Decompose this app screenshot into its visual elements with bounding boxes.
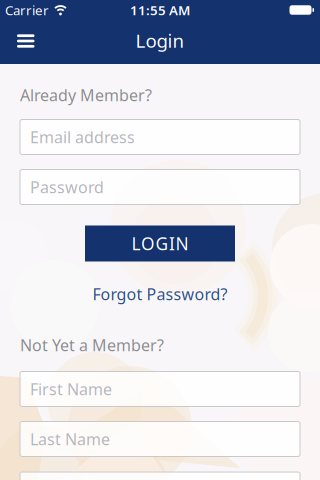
staticText: Email address	[20, 122, 170, 152]
staticText: Carrier	[5, 1, 49, 19]
staticText: First Name	[30, 378, 112, 400]
staticText: Login	[135, 28, 184, 53]
staticText: Email address	[30, 126, 135, 148]
staticText: LOGIN	[131, 232, 188, 255]
button[interactable]: LOGIN	[85, 225, 235, 261]
staticText: First Name	[20, 374, 136, 404]
textField[interactable]: Last Name	[20, 424, 300, 454]
staticText: 11:55 AM	[130, 1, 190, 19]
staticText: Password	[20, 172, 124, 202]
button[interactable]: Menu	[0, 34, 34, 48]
button[interactable]: Forgot Password?	[92, 286, 227, 302]
textField[interactable]: First Name	[20, 374, 300, 404]
staticText: Not Yet a Member?	[20, 334, 164, 356]
staticText: Last Name	[20, 424, 134, 454]
secureTextField[interactable]: Password	[20, 172, 300, 202]
staticText: Already Member?	[20, 84, 152, 106]
staticText: Last Name	[30, 428, 110, 450]
textField[interactable]: Email address	[20, 122, 300, 152]
staticText: Forgot Password?	[92, 283, 227, 305]
staticText: Password	[30, 176, 104, 198]
